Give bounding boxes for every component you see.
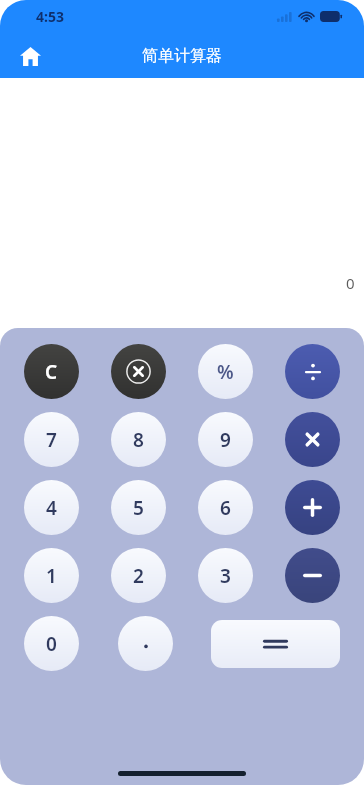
button[interactable]: Subtract bbox=[285, 548, 340, 603]
button[interactable]: C bbox=[24, 344, 79, 399]
staticText: 4:53 bbox=[36, 7, 64, 26]
button[interactable]: Divide bbox=[285, 344, 340, 399]
staticText: % bbox=[217, 359, 234, 385]
staticText: 2 bbox=[133, 563, 144, 589]
button[interactable]: 9 bbox=[198, 412, 253, 467]
button[interactable]: 2 bbox=[111, 548, 166, 603]
button[interactable]: Add bbox=[285, 480, 340, 535]
button[interactable]: Equals bbox=[211, 620, 340, 668]
button[interactable]: 6 bbox=[198, 480, 253, 535]
button[interactable]: 1 bbox=[24, 548, 79, 603]
staticText: 4 bbox=[46, 495, 57, 521]
staticText: 0 bbox=[46, 631, 57, 657]
button[interactable]: % bbox=[198, 344, 253, 399]
staticText: 3 bbox=[220, 563, 231, 589]
button[interactable]: 3 bbox=[198, 548, 253, 603]
button[interactable]: 0 bbox=[24, 616, 79, 671]
button[interactable]: 5 bbox=[111, 480, 166, 535]
staticText: 8 bbox=[133, 427, 144, 453]
staticText: 6 bbox=[220, 495, 231, 521]
button[interactable]: Multiply bbox=[285, 412, 340, 467]
button[interactable]: Home bbox=[13, 39, 47, 73]
button[interactable]: Decimal point bbox=[118, 616, 173, 671]
staticText: 9 bbox=[220, 427, 231, 453]
staticText: 7 bbox=[46, 427, 57, 453]
staticText: C bbox=[45, 359, 58, 385]
button[interactable]: 7 bbox=[24, 412, 79, 467]
button[interactable]: Backspace bbox=[111, 344, 166, 399]
staticText: 5 bbox=[133, 495, 144, 521]
staticText: 1 bbox=[46, 563, 57, 589]
button[interactable]: 4 bbox=[24, 480, 79, 535]
staticText: 0 bbox=[346, 273, 355, 293]
button[interactable]: 8 bbox=[111, 412, 166, 467]
staticText: 简单计算器 bbox=[142, 46, 222, 66]
